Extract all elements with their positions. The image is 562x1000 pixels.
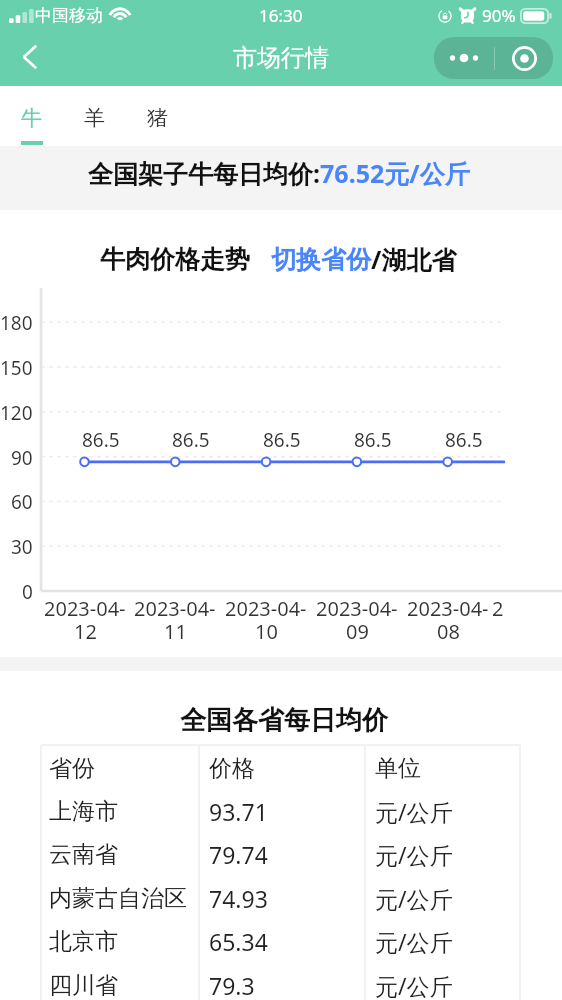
button[interactable]: 四川省 — [41, 962, 520, 1000]
staticText: 元/公斤 — [375, 796, 453, 827]
staticText: 65.34 — [209, 926, 268, 957]
staticText: 120 — [0, 400, 33, 426]
staticText: 元/公斤 — [375, 883, 453, 914]
staticText: 猪 — [147, 105, 168, 131]
staticText: 元/公斤 — [375, 839, 453, 870]
staticText: 上海市 — [49, 797, 118, 826]
staticText: 60 — [11, 489, 33, 515]
button[interactable]: 猪 — [126, 86, 189, 146]
staticText: 79.3 — [209, 970, 255, 1000]
staticText: 09 — [346, 618, 369, 645]
staticText: 16:30 — [259, 4, 303, 27]
staticText: 切换省份 — [271, 244, 371, 275]
staticText: 牛肉价格走势 — [100, 244, 250, 275]
staticText: 10 — [255, 618, 278, 645]
button[interactable]: 云南省 — [41, 831, 520, 874]
staticText: 08 — [437, 618, 460, 645]
button[interactable]: 上海市 — [41, 788, 520, 831]
button[interactable]: 羊 — [63, 86, 126, 146]
staticText: 2023-04- — [134, 595, 216, 622]
button[interactable]: 牛 — [0, 86, 63, 146]
staticText: 2 — [492, 595, 504, 622]
staticText: 90 — [11, 445, 33, 471]
staticText: 省份 — [49, 754, 95, 783]
staticText: /湖北省 — [371, 242, 457, 276]
staticText: 羊 — [84, 105, 105, 131]
staticText: 150 — [0, 355, 33, 381]
staticText: 93.71 — [209, 796, 268, 827]
staticText: 2023-04- — [316, 595, 398, 622]
staticText: 元/公斤 — [375, 970, 453, 1000]
staticText: 内蒙古自治区 — [49, 884, 187, 913]
button[interactable]: Close mini program — [495, 37, 553, 79]
staticText: 30 — [11, 534, 33, 560]
staticText: 86.5 — [354, 427, 392, 453]
button[interactable]: 切换省份 — [271, 244, 371, 275]
button[interactable]: 北京市 — [41, 918, 520, 961]
staticText: 2023-04- — [407, 595, 489, 622]
staticText: 79.74 — [209, 839, 268, 870]
staticText: 86.5 — [172, 427, 210, 453]
staticText: 0 — [22, 579, 33, 605]
staticText: 11 — [164, 618, 187, 645]
staticText: 全国各省每日均价 — [180, 704, 388, 737]
staticText: 元/公斤 — [375, 926, 453, 957]
staticText: 四川省 — [49, 971, 118, 1000]
staticText: 全国架子牛每日均价:76.52元/公斤 — [88, 156, 470, 190]
button[interactable]: 省份 — [41, 745, 520, 788]
staticText: 价格 — [209, 754, 255, 783]
staticText: 86.5 — [82, 427, 120, 453]
staticText: 市场行情 — [233, 43, 329, 73]
staticText: 86.5 — [445, 427, 483, 453]
staticText: 云南省 — [49, 840, 118, 869]
staticText: 牛 — [21, 105, 42, 131]
staticText: 2023-04- — [225, 595, 307, 622]
staticText: 86.5 — [263, 427, 301, 453]
staticText: 90% — [482, 4, 516, 27]
staticText: 180 — [0, 310, 33, 336]
staticText: 2023-04- — [44, 595, 126, 622]
button[interactable]: More options — [434, 37, 494, 79]
staticText: 74.93 — [209, 883, 268, 914]
staticText: 12 — [74, 618, 97, 645]
staticText: 中国移动 — [35, 5, 103, 26]
button[interactable]: 内蒙古自治区 — [41, 875, 520, 918]
staticText: 北京市 — [49, 927, 118, 956]
staticText: 单位 — [375, 754, 421, 783]
button[interactable]: Back — [0, 30, 56, 86]
